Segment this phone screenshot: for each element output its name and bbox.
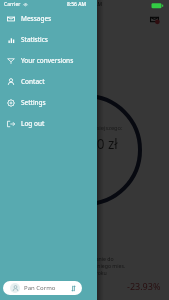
button[interactable]: Log out — [0, 113, 97, 134]
staticText: Your conversions — [21, 56, 74, 65]
staticText: w 2023 roku — [77, 269, 107, 276]
button[interactable]: Your conversions — [0, 50, 97, 71]
staticText: poprzedniego mies. — [77, 262, 126, 269]
staticText: Messages — [21, 14, 52, 23]
button[interactable]: Pan Cormo — [3, 281, 82, 295]
staticText: Carrier — [4, 1, 21, 8]
staticText: 8:56 AM — [67, 1, 87, 8]
staticText: 8:56 AM — [83, 1, 103, 8]
staticText: Porównanie do — [77, 255, 114, 262]
staticText: Log out — [21, 119, 45, 128]
button[interactable]: Messages — [0, 8, 97, 29]
button[interactable]: Settings — [0, 92, 97, 113]
staticText: Contact — [21, 77, 45, 86]
staticText: 3 450,00 zł — [51, 135, 118, 153]
staticText: Carrier — [4, 1, 21, 8]
staticText: Sprzedaż z dnia dzisiejszego: — [46, 124, 123, 132]
button[interactable]: Statistics — [0, 29, 97, 50]
staticText: Settings — [21, 98, 46, 107]
staticText: -23.93% — [127, 280, 161, 292]
button[interactable]: Contact — [0, 71, 97, 92]
staticText: Pan Cormo — [24, 284, 56, 292]
staticText: Statistics — [21, 35, 48, 44]
button[interactable]: Messages — [150, 15, 159, 24]
